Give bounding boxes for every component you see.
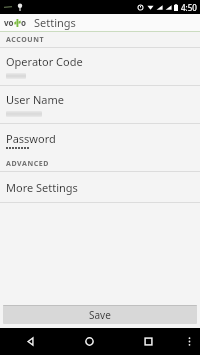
staticText: ADVANCED [6, 159, 50, 169]
staticText: More Settings [6, 180, 78, 195]
staticText: ACCOUNT [6, 35, 45, 45]
staticText: 4:50 [181, 2, 197, 13]
staticText: vo [4, 17, 14, 28]
button[interactable]: Operator Code [0, 48, 200, 85]
button[interactable]: User Name [0, 86, 200, 123]
button[interactable]: Save [3, 305, 197, 324]
staticText: User Name [6, 92, 64, 107]
button[interactable]: Recent apps [119, 328, 178, 355]
button[interactable]: More options [178, 328, 200, 355]
button[interactable]: Password [0, 124, 200, 156]
staticText: Settings [34, 15, 76, 30]
button[interactable]: More Settings [0, 172, 200, 202]
staticText: Password [6, 131, 56, 146]
staticText: o [21, 17, 26, 28]
button[interactable]: Home [60, 328, 119, 355]
staticText: Operator Code [6, 54, 83, 69]
button[interactable]: Back [0, 328, 60, 355]
staticText: Save [89, 308, 111, 322]
